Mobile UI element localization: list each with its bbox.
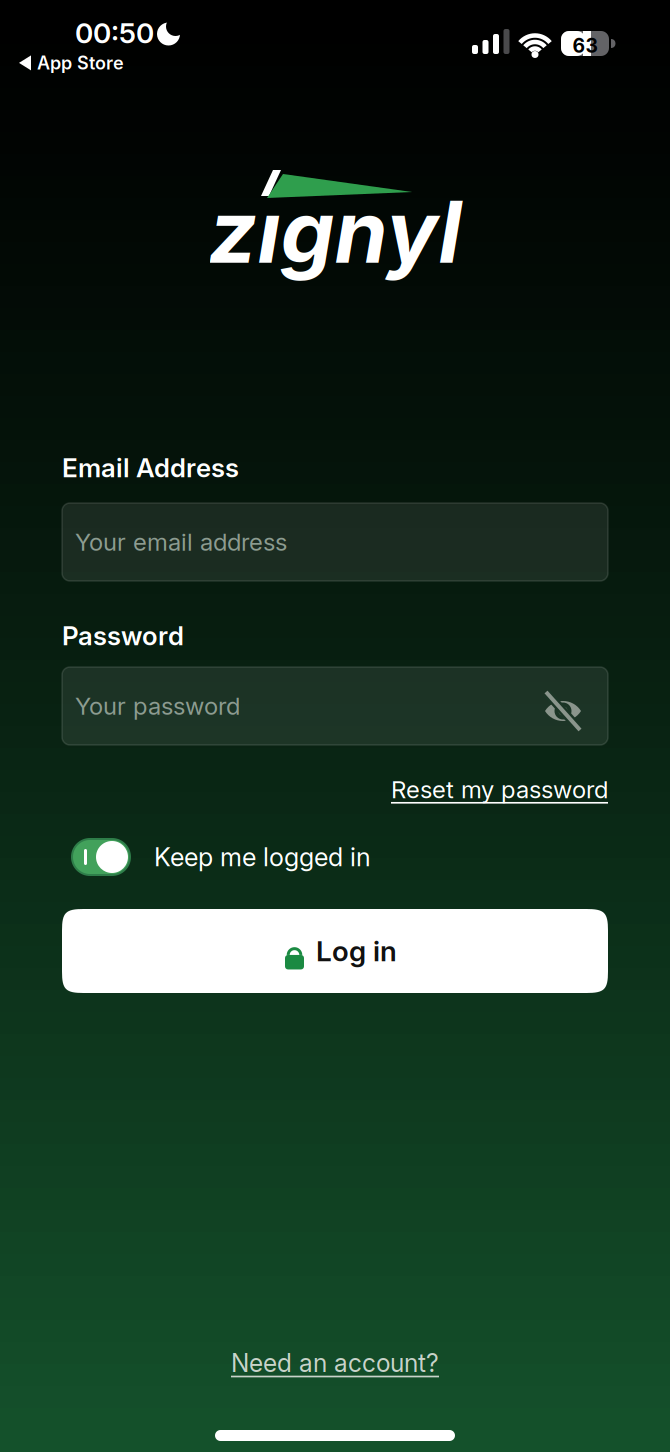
button[interactable]: Log in	[62, 909, 608, 993]
staticText: Your email address	[75, 527, 287, 556]
staticText: Log in	[316, 934, 397, 968]
button[interactable]: Keep me logged in	[72, 839, 371, 875]
button[interactable]: Password	[62, 667, 608, 745]
button[interactable]: Need an account?	[231, 1348, 439, 1378]
staticText: Your password	[75, 691, 240, 720]
button[interactable]: Show password	[540, 688, 586, 734]
button[interactable]: Back to App Store	[19, 52, 124, 74]
button[interactable]: Email Address	[62, 503, 608, 581]
staticText: Password	[62, 620, 184, 651]
staticText: Reset my password	[391, 775, 608, 804]
staticText: 00:50	[75, 16, 154, 50]
staticText: zıgnyl	[208, 180, 461, 283]
staticText: App Store	[37, 52, 124, 74]
staticText: 63	[572, 34, 597, 57]
staticText: Keep me logged in	[154, 842, 371, 872]
staticText: Need an account?	[231, 1348, 439, 1378]
staticText: Email Address	[62, 452, 239, 483]
button[interactable]: Reset my password	[391, 775, 608, 804]
